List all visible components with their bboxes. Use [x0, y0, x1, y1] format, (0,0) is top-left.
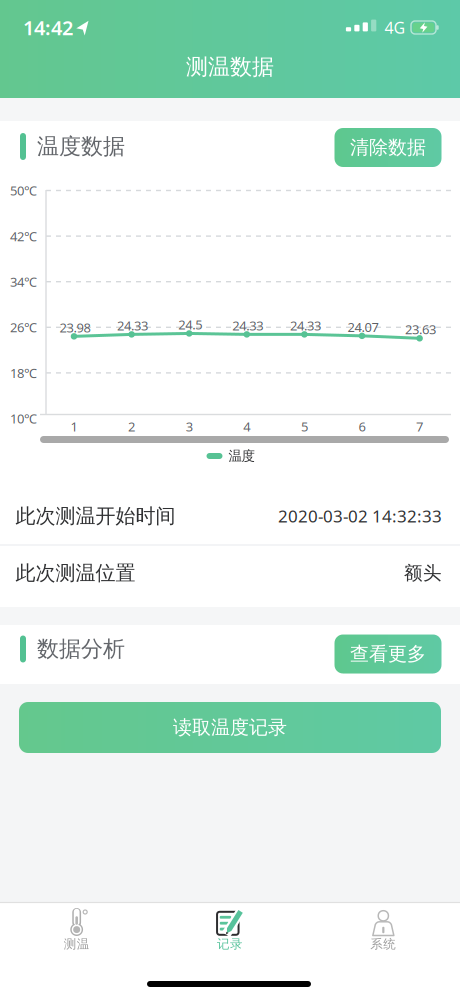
staticText: 额头	[404, 561, 442, 585]
button[interactable]: 读取温度记录	[19, 702, 441, 753]
staticText: 测温	[64, 936, 90, 952]
staticText: 24.33	[232, 316, 263, 334]
staticText: 查看更多	[350, 642, 426, 666]
staticText: 24.33	[117, 316, 148, 334]
staticText: 清除数据	[350, 135, 426, 159]
staticText: 6	[358, 418, 365, 435]
staticText: 测温数据	[186, 53, 274, 81]
staticText: 1	[70, 418, 77, 435]
staticText: 23.63	[405, 320, 436, 338]
staticText: 2	[128, 418, 135, 435]
staticText: 24.33	[290, 316, 321, 334]
staticText: 23.98	[59, 318, 90, 336]
button[interactable]: 清除数据	[334, 128, 441, 167]
staticText: 2020-03-02 14:32:33	[278, 504, 442, 528]
staticText: 此次测温开始时间	[15, 503, 175, 529]
staticText: 34℃	[10, 273, 37, 290]
staticText: 温度	[228, 447, 254, 464]
staticText: 10℃	[10, 410, 37, 427]
staticText: 18℃	[10, 364, 37, 382]
staticText: 50℃	[10, 182, 37, 199]
staticText: 此次测温位置	[15, 560, 135, 586]
staticText: 数据分析	[37, 635, 125, 663]
button[interactable]: 记录	[153, 902, 307, 974]
staticText: 读取温度记录	[173, 715, 287, 739]
staticText: 24.5	[178, 316, 202, 333]
staticText: 24.07	[347, 318, 378, 336]
staticText: 4G	[384, 17, 405, 38]
button[interactable]: 查看更多	[334, 634, 441, 673]
staticText: 26℃	[10, 318, 37, 336]
staticText: 记录	[217, 936, 243, 952]
staticText: 14:42	[23, 14, 73, 41]
staticText: 4	[243, 418, 250, 435]
staticText: 系统	[370, 936, 396, 952]
staticText: 42℃	[10, 227, 37, 245]
staticText: 温度数据	[37, 133, 125, 160]
staticText: 3	[186, 418, 193, 435]
button[interactable]: 测温	[0, 902, 153, 974]
staticText: 7	[416, 418, 423, 435]
button[interactable]: 系统	[307, 902, 460, 974]
staticText: 5	[301, 418, 308, 435]
